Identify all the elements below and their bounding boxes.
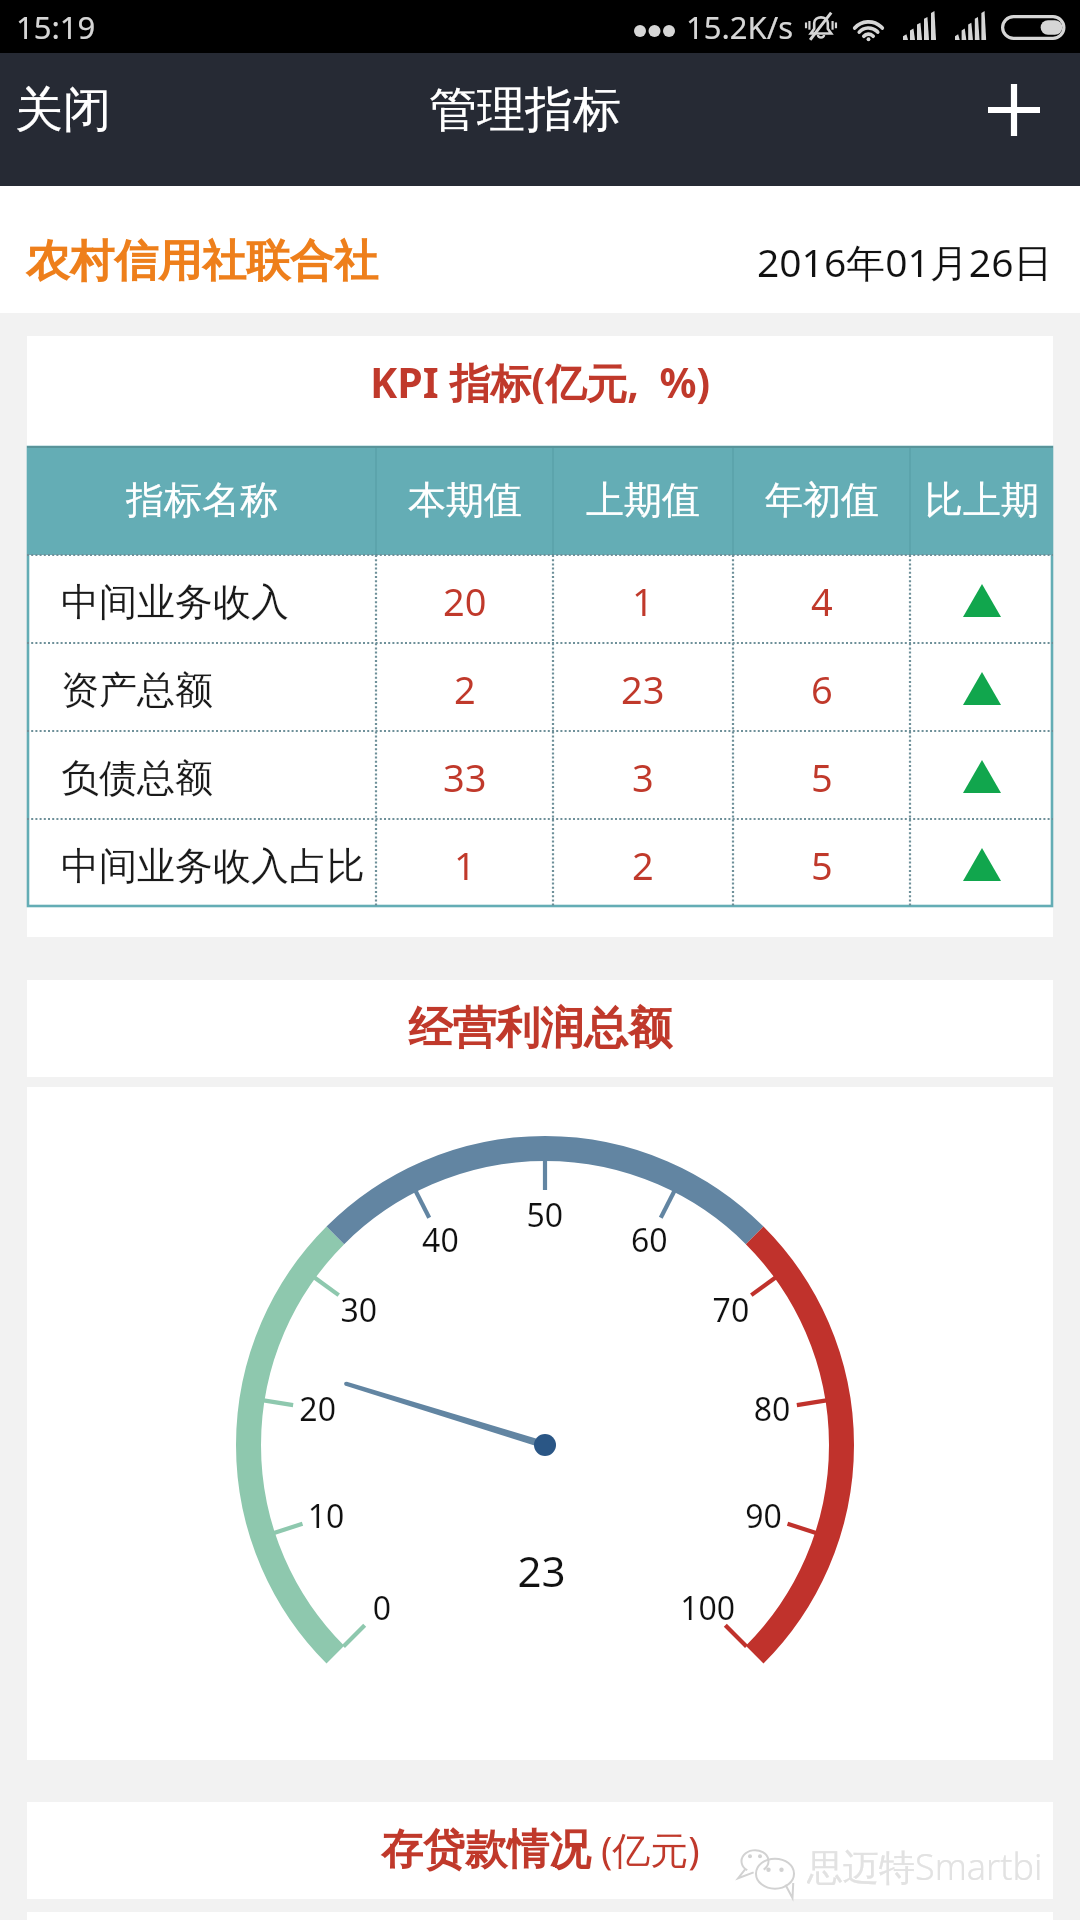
staticText: 15.2K/s xyxy=(686,6,794,48)
staticText: 20 xyxy=(443,575,487,627)
staticText: 指标名称 xyxy=(126,476,278,524)
staticText: 2016年01月26日 xyxy=(757,235,1053,288)
staticText: 比上期 xyxy=(925,476,1039,524)
staticText: 负债总额 xyxy=(61,754,213,802)
staticText: 中间业务收入 xyxy=(61,578,289,626)
button[interactable]: 经营利润总额 仪表盘 23 xyxy=(27,1087,1053,1760)
staticText: 2 xyxy=(454,663,476,715)
button[interactable]: KPI 指标(亿元, %) xyxy=(27,336,1053,436)
staticText: 经营利润总额 xyxy=(408,1001,672,1056)
staticText: 23 xyxy=(621,663,665,715)
staticText: 1 xyxy=(454,839,476,891)
staticText: 管理指标 xyxy=(429,80,621,140)
button[interactable]: 资产总额 xyxy=(27,643,1053,731)
button[interactable]: 负债总额 xyxy=(27,731,1053,819)
staticText: 资产总额 xyxy=(61,666,213,714)
staticText: KPI 指标(亿元, %) xyxy=(370,354,711,410)
staticText: 5 xyxy=(811,839,833,891)
button[interactable]: 关闭 xyxy=(0,62,141,158)
staticText: 4 xyxy=(811,575,833,627)
staticText: 5 xyxy=(811,751,833,803)
staticText: 3 xyxy=(632,751,654,803)
staticText: 6 xyxy=(811,663,833,715)
staticText: 农村信用社联合社 xyxy=(26,234,378,289)
staticText: (亿元) xyxy=(591,1823,700,1875)
staticText: 15:19 xyxy=(16,6,96,48)
button[interactable]: 经营利润总额 xyxy=(27,980,1053,1077)
button[interactable]: 中间业务收入占比 xyxy=(27,819,1053,907)
staticText: 思迈特Smartbi xyxy=(807,1842,1043,1890)
staticText: 存贷款情况 xyxy=(381,1824,591,1877)
staticText: 上期值 xyxy=(586,476,700,524)
button[interactable]: 存贷款情况 xyxy=(27,1802,1053,1899)
staticText: 关闭 xyxy=(15,80,111,140)
button[interactable]: 中间业务收入 xyxy=(27,555,1053,643)
button[interactable]: Add xyxy=(960,62,1080,158)
staticText: 2 xyxy=(632,839,654,891)
staticText: 1 xyxy=(632,575,654,627)
staticText: 33 xyxy=(443,751,487,803)
staticText: 本期值 xyxy=(408,476,522,524)
staticText: 中间业务收入占比 xyxy=(61,842,365,890)
staticText: 年初值 xyxy=(765,476,879,524)
